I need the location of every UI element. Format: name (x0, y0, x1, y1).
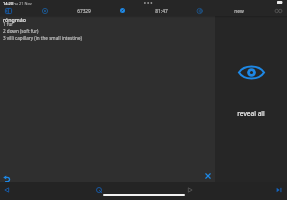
staticText: Thu 21 Nov (11, 1, 32, 6)
button[interactable]: Close (205, 173, 211, 179)
staticText: 1 fur (3, 21, 14, 27)
staticText: reveal all (237, 109, 265, 118)
button[interactable]: Switch keyboard (276, 187, 282, 193)
button[interactable]: Recents (187, 187, 193, 193)
button[interactable]: Home (96, 187, 102, 193)
button[interactable]: Undo (3, 175, 10, 182)
button[interactable]: reveal all (215, 16, 287, 183)
staticText: 2 down (soft fur) (3, 28, 39, 34)
button[interactable]: Record audio (42, 8, 48, 14)
staticText: 3 villi capillary (in the small intestin… (3, 35, 82, 41)
button[interactable]: Play audio (197, 8, 203, 14)
staticText: 67329 (77, 8, 91, 15)
staticText: róngmáo (3, 16, 26, 23)
button[interactable]: Back (4, 187, 10, 193)
button[interactable]: More options (274, 9, 283, 13)
staticText: 81:47 (155, 8, 168, 15)
staticText: new (234, 8, 244, 15)
button[interactable]: Edit card (120, 8, 125, 13)
staticText: 14:20 (3, 1, 13, 6)
button[interactable]: Flip card (5, 8, 12, 14)
